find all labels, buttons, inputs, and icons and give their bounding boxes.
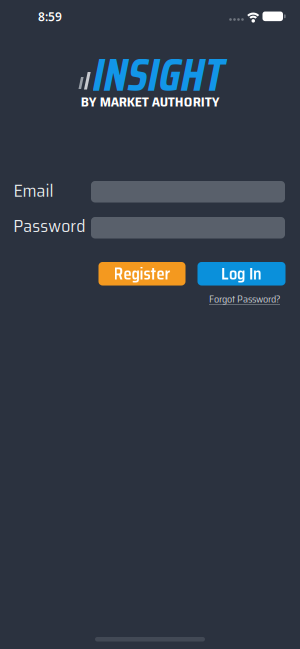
staticText: BY MARKET AUTHORITY: [81, 90, 220, 113]
staticText: Password: [13, 211, 85, 240]
staticText: 8:59: [38, 8, 62, 24]
staticText: Log In: [221, 261, 262, 287]
button[interactable]: Register: [98, 262, 185, 285]
staticText: Register: [113, 261, 170, 287]
button[interactable]: Log In: [197, 262, 285, 285]
staticText: Email: [13, 176, 53, 204]
staticText: INSIGHT: [90, 39, 221, 111]
button[interactable]: Forgot Password?: [209, 291, 280, 307]
staticText: Forgot Password?: [209, 291, 280, 307]
